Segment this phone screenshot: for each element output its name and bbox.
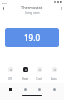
button[interactable]: Cool	[34, 67, 44, 81]
button[interactable]: Off	[5, 67, 15, 81]
staticText: Thermostat	[21, 5, 43, 10]
staticText: Off	[8, 77, 12, 81]
button[interactable]: Heat	[20, 67, 30, 81]
button[interactable]: Tab 3	[50, 85, 58, 93]
button[interactable]: More options	[58, 5, 64, 11]
button[interactable]: Auto	[49, 67, 59, 81]
button[interactable]: Tab 1	[21, 85, 29, 93]
staticText: 9:30	[2, 1, 7, 4]
button[interactable]: Tab 2	[35, 85, 43, 93]
button[interactable]: Back	[0, 5, 6, 11]
staticText: Living room	[25, 11, 40, 15]
staticText: 19.0	[24, 32, 40, 43]
staticText: Heat	[22, 77, 28, 81]
staticText: Auto	[51, 77, 57, 81]
button[interactable]: 19.0	[5, 28, 59, 47]
staticText: Cool	[36, 77, 42, 81]
button[interactable]: Tab 0	[6, 85, 14, 93]
